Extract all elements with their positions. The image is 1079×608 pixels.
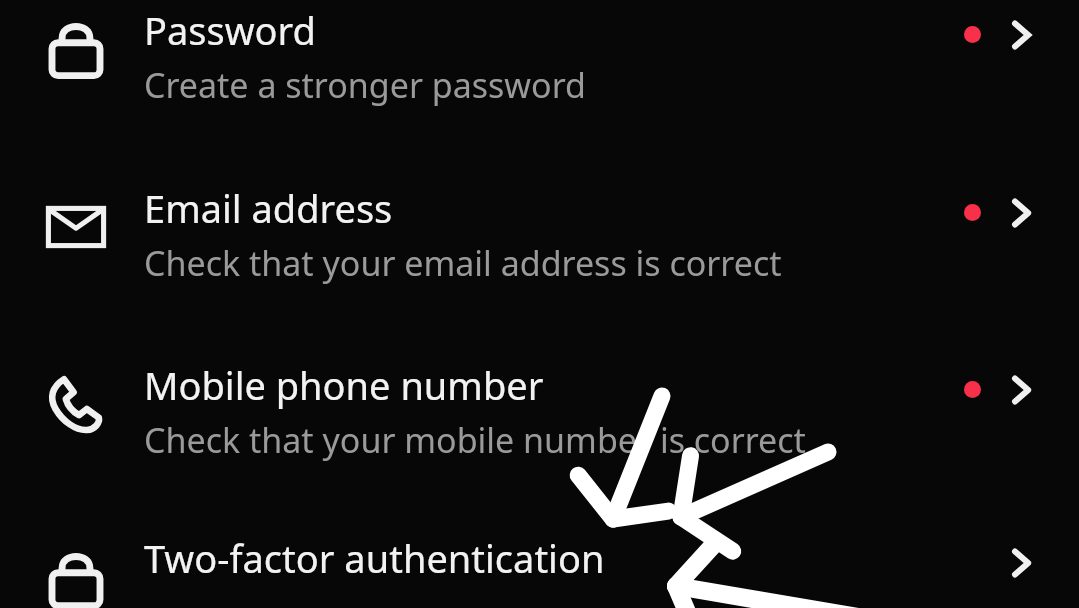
staticText: Check that your mobile number is correct [144,417,806,463]
other: Open Mobile phone number [1006,373,1036,407]
staticText: Create a stronger password [144,62,586,108]
staticText: Two-factor authentication [144,532,605,584]
staticText: Mobile phone number [144,359,544,411]
button[interactable]: Password [0,6,1079,176]
button[interactable]: Mobile phone number [0,361,1079,531]
staticText: Password [144,4,316,56]
other: Open Two-factor authentication [1006,546,1036,580]
other: Open Email address [1006,196,1036,230]
button[interactable]: Email address [0,184,1079,354]
staticText: Check that your email address is correct [144,240,782,286]
button[interactable]: Two-factor authentication [0,534,1079,608]
other: Open Password [1006,18,1036,52]
staticText: Email address [144,182,393,234]
